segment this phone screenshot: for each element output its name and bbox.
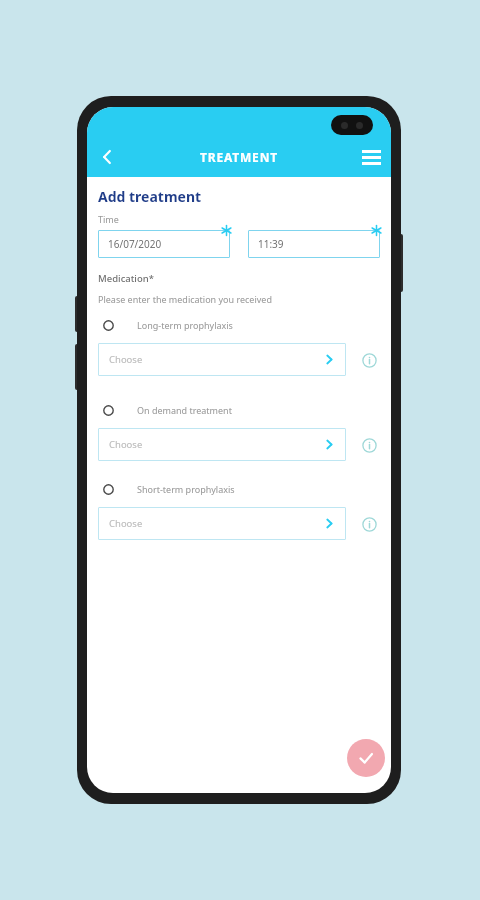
button[interactable]: Choose: [98, 507, 346, 540]
button[interactable]: Information: [358, 513, 380, 535]
button[interactable]: Choose: [98, 428, 346, 461]
button[interactable]: Information: [358, 349, 380, 371]
button[interactable]: 11:39: [248, 230, 380, 258]
button[interactable]: Menu: [351, 137, 391, 177]
staticText: Choose: [109, 353, 143, 366]
staticText: TREATMENT: [127, 149, 351, 165]
button[interactable]: Confirm: [347, 739, 385, 777]
staticText: Medication*: [98, 272, 154, 285]
staticText: On demand treatment: [137, 404, 232, 416]
button[interactable]: Back: [87, 137, 127, 177]
staticText: Choose: [109, 517, 143, 530]
staticText: Please enter the medication you received: [98, 293, 272, 305]
staticText: 11:39: [258, 237, 284, 251]
staticText: Add treatment: [98, 187, 202, 206]
button[interactable]: Choose: [98, 343, 346, 376]
button[interactable]: 16/07/2020: [98, 230, 230, 258]
button[interactable]: Short-term prophylaxis: [98, 483, 380, 495]
staticText: Time: [98, 213, 119, 225]
staticText: Long-term prophylaxis: [137, 319, 233, 331]
button[interactable]: Information: [358, 434, 380, 456]
button[interactable]: On demand treatment: [98, 404, 380, 416]
staticText: 16/07/2020: [108, 237, 162, 251]
staticText: Choose: [109, 438, 143, 451]
button[interactable]: Long-term prophylaxis: [98, 319, 380, 331]
staticText: Short-term prophylaxis: [137, 483, 235, 495]
